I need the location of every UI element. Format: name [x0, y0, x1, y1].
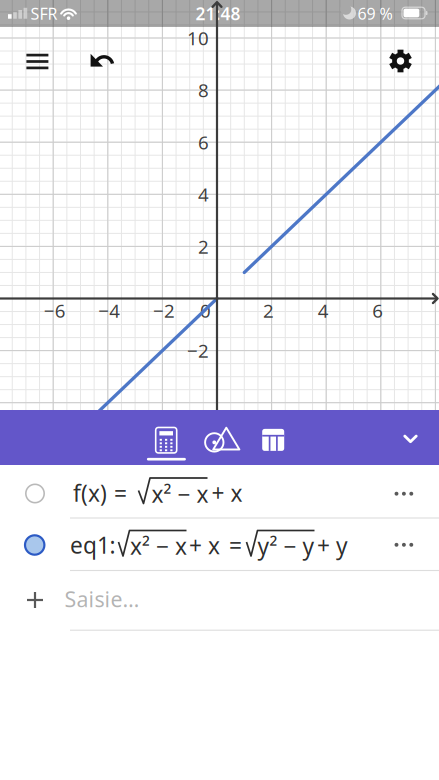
staticText: −6 [44, 298, 66, 323]
staticText: 8 [198, 78, 209, 102]
staticText: 2 [263, 298, 274, 323]
staticText: 21:48 [195, 2, 240, 25]
staticText: + y [317, 530, 348, 560]
button[interactable]: More options for eq1 [389, 535, 419, 555]
staticText: 4 [318, 298, 329, 323]
staticText: eq1 [70, 530, 110, 560]
staticText: −2 [153, 298, 175, 323]
staticText: + x [189, 530, 220, 560]
staticText: = [114, 478, 127, 508]
staticText: SFR [30, 3, 57, 24]
button[interactable]: Algebra [140, 413, 192, 468]
button[interactable]: Tools [195, 412, 247, 467]
button[interactable]: More options for f [389, 484, 419, 504]
button[interactable]: Hide algebra input [388, 411, 432, 466]
staticText: x² − x [151, 479, 208, 509]
button[interactable]: f(x) [60, 467, 380, 519]
button[interactable]: Saisie… [0, 570, 439, 630]
button[interactable]: eq1 [60, 519, 380, 571]
button[interactable]: Menu [25, 54, 49, 69]
staticText: + x [211, 478, 242, 508]
button[interactable]: Show f [26, 484, 44, 503]
button[interactable]: Hide eq1 [25, 535, 44, 555]
staticText: y² − y [257, 531, 314, 561]
button[interactable]: Table [247, 412, 299, 467]
staticText: 0 [200, 298, 211, 323]
staticText: −2 [187, 338, 209, 363]
staticText: Saisie… [64, 585, 139, 613]
staticText: 4 [198, 182, 209, 207]
staticText: 2 [198, 234, 209, 259]
staticText: : [109, 530, 115, 560]
staticText: = [229, 530, 242, 560]
button[interactable]: Settings [388, 48, 413, 73]
button[interactable]: Undo [88, 51, 116, 70]
staticText: 10 [187, 26, 209, 50]
staticText: −4 [98, 298, 120, 323]
staticText: 6 [372, 298, 383, 323]
staticText: 6 [198, 130, 209, 155]
staticText: f(x) [73, 478, 107, 508]
staticText: 69 % [357, 3, 392, 24]
staticText: x² − x [130, 531, 187, 561]
